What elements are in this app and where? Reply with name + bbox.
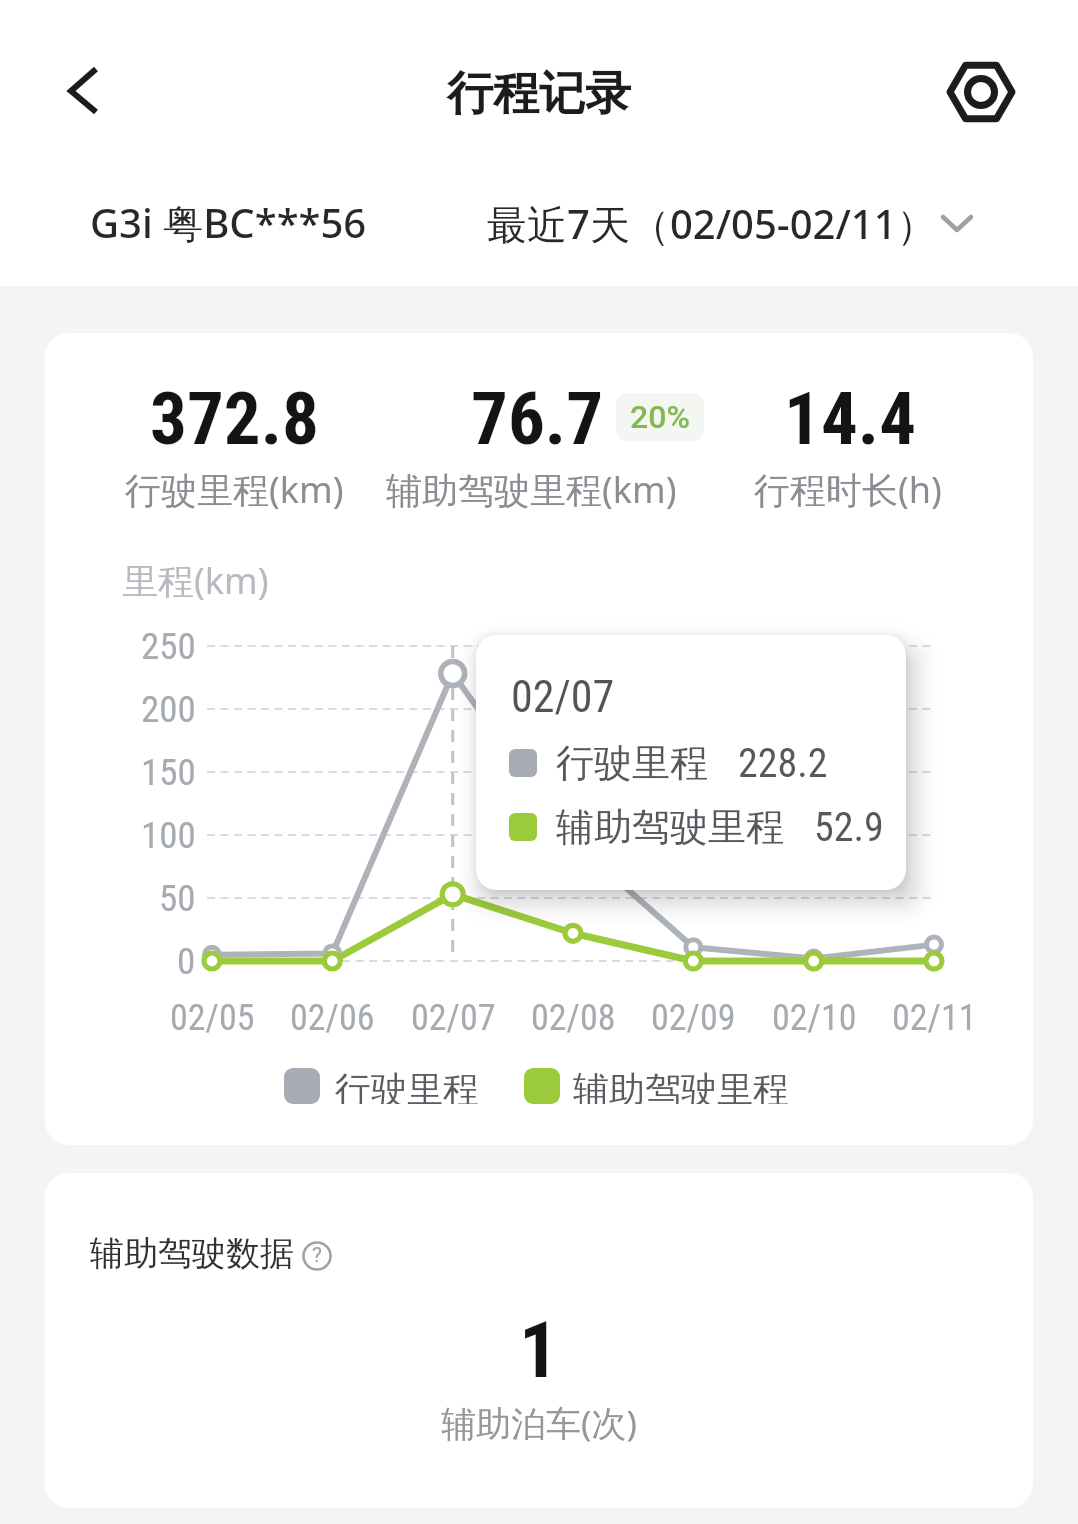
staticText: 02/05: [170, 997, 255, 1039]
staticText: 52.9: [814, 804, 884, 851]
staticText: 20%: [630, 398, 690, 436]
staticText: 辅助驾驶里程: [556, 803, 784, 851]
button[interactable]: [50, 60, 114, 124]
staticText: G3i 粤BC***56: [90, 195, 367, 250]
staticText: 行驶里程: [335, 1067, 479, 1104]
staticText: 02/06: [290, 997, 375, 1039]
staticText: 行驶里程(km): [125, 465, 344, 514]
staticText: 100: [141, 814, 196, 857]
staticText: 228.2: [738, 740, 828, 787]
staticText: 50: [159, 877, 196, 920]
staticText: 辅助泊车(次): [441, 1399, 638, 1447]
staticText: 行驶里程: [556, 739, 708, 787]
staticText: 里程(km): [122, 556, 269, 605]
staticText: 76.7: [471, 376, 604, 462]
staticText: 200: [141, 688, 196, 731]
staticText: 辅助驾驶里程(km): [386, 465, 677, 514]
staticText: 250: [141, 625, 196, 668]
staticText: 02/10: [772, 997, 857, 1039]
staticText: 02/08: [531, 997, 616, 1039]
staticText: 行程记录: [447, 65, 631, 123]
staticText: 1: [519, 1305, 559, 1396]
staticText: 02/09: [651, 997, 736, 1039]
staticText: 02/07: [411, 997, 496, 1039]
button[interactable]: ?: [301, 1241, 333, 1273]
staticText: 辅助驾驶里程: [573, 1067, 789, 1104]
staticText: 0: [177, 940, 196, 983]
button[interactable]: 最近7天（02/05-02/11）: [470, 190, 990, 256]
staticText: 02/07: [511, 671, 615, 723]
staticText: 辅助驾驶数据: [90, 1232, 294, 1275]
staticText: 150: [141, 751, 196, 794]
staticText: 行程时长(h): [754, 465, 942, 514]
staticText: 372.8: [150, 376, 319, 462]
button[interactable]: [944, 56, 1018, 130]
staticText: 最近7天（02/05-02/11）: [487, 196, 937, 251]
staticText: 14.4: [784, 376, 917, 462]
staticText: ?: [312, 1243, 322, 1268]
staticText: 02/11: [892, 997, 977, 1039]
